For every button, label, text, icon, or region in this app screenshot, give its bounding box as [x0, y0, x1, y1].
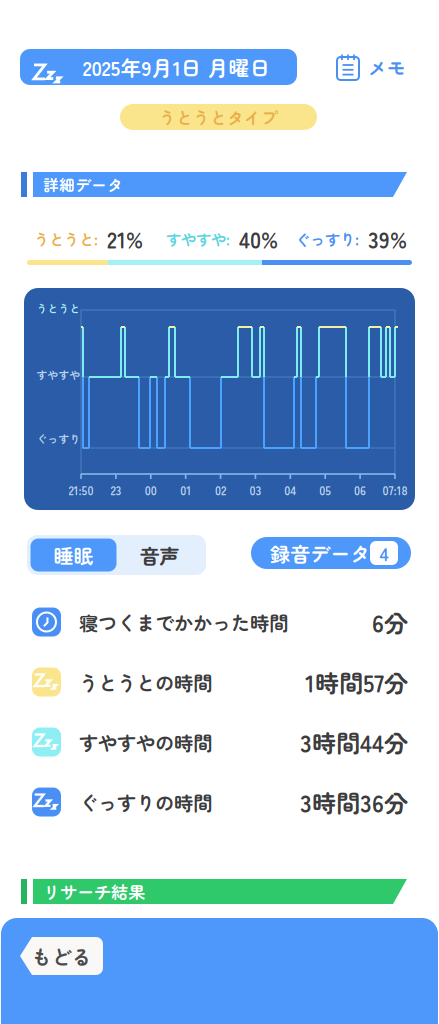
staticText: 録音データ	[270, 538, 370, 567]
staticText: 06	[354, 481, 366, 499]
staticText: 04	[284, 481, 296, 499]
staticText: 詳細データ	[43, 173, 123, 196]
staticText: 2025年9月1日 月曜日	[82, 52, 270, 82]
staticText: ぐっすりの時間	[79, 788, 212, 816]
staticText: 05	[319, 481, 331, 499]
staticText: うとうとの時間	[79, 668, 212, 696]
staticText: うとうと	[36, 300, 80, 316]
staticText: リサーチ結果	[43, 879, 145, 904]
staticText: 音声	[139, 540, 179, 569]
staticText: 3時間44分	[300, 725, 408, 759]
staticText: 寝つくまでかかった時間	[79, 608, 288, 636]
button[interactable]: 寝つくまでかかった時間	[0, 597, 439, 647]
button[interactable]: メモ	[337, 52, 406, 82]
button[interactable]: すやすやの時間	[0, 717, 439, 767]
staticText: うとうと:	[34, 228, 98, 250]
staticText: 21%	[107, 223, 143, 255]
staticText: 21:50	[68, 481, 93, 499]
button[interactable]: 音声	[116, 538, 202, 571]
staticText: 3時間36分	[300, 785, 408, 819]
button[interactable]: うとうとの時間	[0, 657, 439, 707]
button[interactable]: もどる	[20, 937, 103, 975]
staticText: 1時間57分	[305, 665, 408, 699]
staticText: すやすやの時間	[79, 728, 212, 756]
staticText: 07:18	[382, 481, 407, 499]
staticText: 39%	[368, 223, 407, 255]
button[interactable]: ぐっすりの時間	[0, 777, 439, 827]
button[interactable]: 録音データ	[251, 537, 411, 569]
staticText: 03	[249, 481, 261, 499]
staticText: 23	[110, 481, 121, 499]
staticText: 02	[215, 481, 226, 499]
staticText: ぐっすり:	[295, 228, 359, 250]
staticText: 00	[145, 481, 157, 499]
button[interactable]: 睡眠	[30, 538, 116, 571]
staticText: 01	[180, 481, 191, 499]
staticText: すやすや:	[166, 228, 230, 250]
button[interactable]: 2025年9月1日 月曜日	[20, 49, 297, 85]
staticText: メモ	[368, 53, 406, 80]
staticText: 睡眠	[53, 540, 93, 569]
staticText: すやすや	[36, 367, 80, 382]
staticText: 4	[379, 539, 388, 566]
staticText: ぐっすり	[36, 431, 80, 446]
staticText: もどる	[31, 941, 91, 970]
staticText: 6分	[372, 605, 408, 639]
staticText: うとうとタイプ	[159, 105, 278, 129]
staticText: 40%	[239, 223, 278, 255]
